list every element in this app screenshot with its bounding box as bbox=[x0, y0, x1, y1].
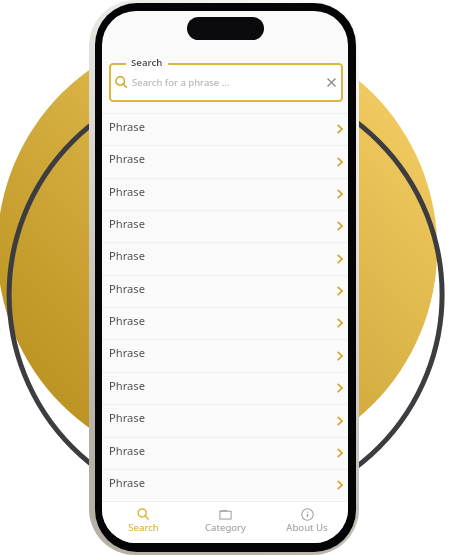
button[interactable]: Phrase bbox=[102, 145, 348, 178]
button[interactable]: Search bbox=[102, 501, 184, 543]
staticText: Phrase bbox=[109, 119, 146, 134]
staticText: Search for a phrase ... bbox=[132, 76, 230, 89]
other: Open phrase bbox=[335, 480, 345, 490]
button[interactable]: Phrase bbox=[102, 113, 348, 145]
staticText: Phrase bbox=[109, 443, 146, 458]
staticText: Phrase bbox=[109, 313, 146, 328]
staticText: Phrase bbox=[109, 248, 146, 263]
staticText: Phrase bbox=[109, 475, 146, 490]
button[interactable]: Search for a phrase ... bbox=[109, 63, 343, 102]
other: Open phrase bbox=[335, 416, 345, 426]
button[interactable]: About Us bbox=[266, 501, 348, 543]
other: Clear search bbox=[326, 77, 337, 88]
staticText: Phrase bbox=[109, 345, 146, 360]
other: Open phrase bbox=[335, 221, 345, 231]
other: Open phrase bbox=[335, 351, 345, 361]
staticText: Phrase bbox=[109, 281, 146, 296]
staticText: Phrase bbox=[109, 184, 146, 199]
staticText: Search bbox=[128, 521, 159, 534]
other: Open phrase bbox=[335, 448, 345, 458]
button[interactable]: Phrase bbox=[102, 372, 348, 404]
other: Open phrase bbox=[335, 189, 345, 199]
staticText: Phrase bbox=[109, 378, 146, 393]
other: Open phrase bbox=[335, 286, 345, 296]
button[interactable]: Phrase bbox=[102, 469, 348, 501]
staticText: Phrase bbox=[109, 216, 146, 231]
staticText: Phrase bbox=[109, 151, 146, 166]
button[interactable]: Phrase bbox=[102, 437, 348, 469]
button[interactable]: Phrase bbox=[102, 242, 348, 275]
button[interactable]: Phrase bbox=[102, 404, 348, 437]
staticText: Category bbox=[205, 521, 246, 534]
other: Open phrase bbox=[335, 383, 345, 393]
button[interactable]: Phrase bbox=[102, 210, 348, 242]
other: Open phrase bbox=[335, 124, 345, 134]
button[interactable]: Phrase bbox=[102, 339, 348, 372]
button[interactable]: Category bbox=[184, 501, 266, 543]
button[interactable]: Phrase bbox=[102, 307, 348, 339]
staticText: Phrase bbox=[109, 410, 146, 425]
other: Open phrase bbox=[335, 157, 345, 167]
other: Open phrase bbox=[335, 254, 345, 264]
staticText: Search bbox=[131, 56, 163, 69]
button[interactable]: Phrase bbox=[102, 275, 348, 307]
button[interactable]: Phrase bbox=[102, 178, 348, 210]
staticText: About Us bbox=[286, 521, 328, 534]
other: Open phrase bbox=[335, 318, 345, 328]
